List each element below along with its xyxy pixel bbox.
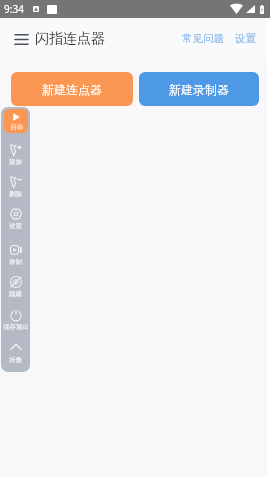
staticText: 添加 [9,158,22,166]
staticText: 设置 [9,222,22,230]
staticText: 保存退出 [3,323,29,331]
button[interactable]: Delete [1,176,30,198]
button[interactable]: Save and exit [1,309,30,331]
button[interactable]: Menu [11,29,31,49]
staticText: 新建录制器 [169,82,229,97]
staticText: 启动 [10,123,23,131]
button[interactable]: Add [1,144,30,166]
button[interactable]: Hide [1,276,30,298]
button[interactable]: Settings [1,208,30,230]
staticText: 新建连点器 [42,82,102,97]
staticText: 设置 [235,32,256,45]
staticText: 删除 [9,190,22,198]
button[interactable]: Collapse [1,342,30,364]
staticText: 常见问题 [182,32,224,45]
staticText: 闪指连点器 [35,30,105,48]
staticText: 录制 [9,258,22,266]
button[interactable]: 新建录制器 [139,72,259,106]
staticText: 折叠 [9,356,22,364]
staticText: 9:34 [4,2,24,16]
button[interactable]: 常见问题 [179,24,227,53]
button[interactable]: 新建连点器 [11,72,133,106]
staticText: 隐藏 [9,290,22,298]
button[interactable]: Record [1,244,30,266]
button[interactable]: 设置 [232,24,259,53]
button[interactable]: 启动 [4,109,28,133]
